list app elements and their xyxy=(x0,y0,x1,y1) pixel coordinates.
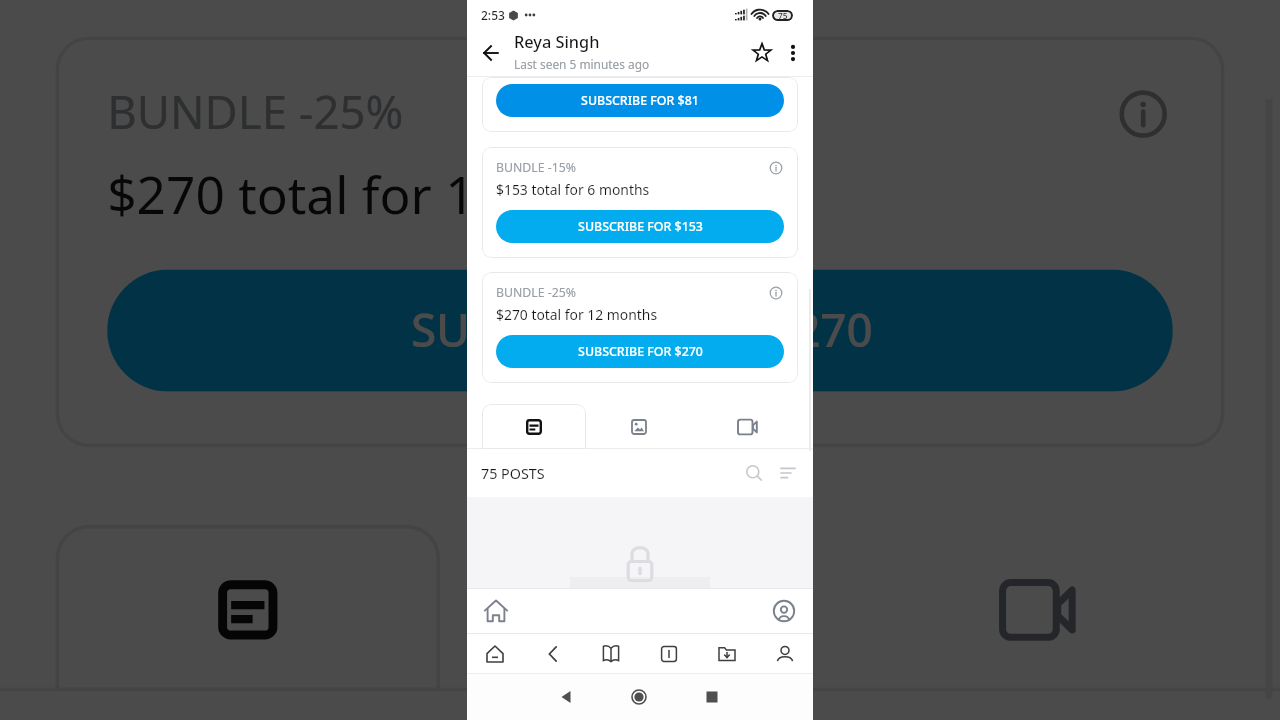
button[interactable]: SUBSCRIBE FOR $270 xyxy=(107,269,1173,392)
button[interactable]: Favorite xyxy=(748,39,776,67)
button[interactable]: BUNDLE -15% xyxy=(482,147,798,258)
staticText: SUBSCRIBE FOR $270 xyxy=(411,299,873,362)
button[interactable]: Videos tab xyxy=(832,525,1225,691)
button[interactable]: Bundle info xyxy=(768,285,784,301)
staticText: $270 total for 12 months xyxy=(107,158,707,229)
staticText: 2:53 xyxy=(481,7,505,23)
button[interactable]: Browser home xyxy=(483,642,507,666)
staticText: SUBSCRIBE FOR $81 xyxy=(581,92,699,109)
button[interactable]: Posts tab xyxy=(482,404,586,449)
button[interactable]: Photos tab xyxy=(628,416,650,438)
button[interactable]: More options xyxy=(782,42,804,64)
button[interactable]: Videos tab xyxy=(692,404,798,449)
button[interactable]: Back xyxy=(554,685,578,709)
staticText: Reya Singh xyxy=(514,31,600,53)
staticText: $270 total for 12 months xyxy=(496,305,658,324)
button[interactable]: SUBSCRIBE FOR $153 xyxy=(496,210,784,243)
staticText: BUNDLE -25% xyxy=(496,284,577,301)
button[interactable]: Back xyxy=(477,39,505,67)
staticText: SUBSCRIBE FOR $153 xyxy=(578,218,703,235)
button[interactable]: BUNDLE -25% xyxy=(482,272,798,383)
button[interactable]: SUBSCRIBE FOR $81 xyxy=(496,84,784,117)
button[interactable]: Photos tab xyxy=(596,569,677,651)
staticText: $153 total for 6 months xyxy=(496,180,650,199)
staticText: SUBSCRIBE FOR $270 xyxy=(578,343,703,360)
button[interactable]: Tabs xyxy=(657,642,681,666)
button[interactable]: Search xyxy=(743,462,765,484)
button[interactable]: Sort xyxy=(777,462,799,484)
staticText: 75 xyxy=(778,10,788,21)
button[interactable]: Home xyxy=(627,685,651,709)
button[interactable]: Posts tab xyxy=(55,525,440,691)
staticText: BUNDLE -25% xyxy=(107,81,407,144)
button[interactable]: Home xyxy=(482,597,510,625)
button[interactable]: Bookmarks xyxy=(599,642,623,666)
button[interactable]: Bundle info xyxy=(1114,84,1173,144)
button[interactable]: Photos tab xyxy=(440,525,832,691)
button[interactable]: SUBSCRIBE FOR $81 xyxy=(482,77,798,132)
button[interactable]: BUNDLE -25% xyxy=(55,36,1225,447)
staticText: 75 POSTS xyxy=(481,464,545,483)
button[interactable]: Account xyxy=(770,597,798,625)
staticText: BUNDLE -15% xyxy=(496,159,577,176)
button[interactable]: Posts tab xyxy=(207,569,288,651)
button[interactable]: SUBSCRIBE FOR $270 xyxy=(496,335,784,368)
button[interactable]: Profile xyxy=(773,642,797,666)
button[interactable]: Videos tab xyxy=(734,416,756,438)
button[interactable]: Videos tab xyxy=(988,569,1069,651)
button[interactable]: Posts tab xyxy=(523,416,545,438)
button[interactable]: Recents xyxy=(700,685,724,709)
button[interactable]: Bundle info xyxy=(768,160,784,176)
button[interactable]: Back xyxy=(541,642,565,666)
staticText: Last seen 5 minutes ago xyxy=(514,56,650,72)
button[interactable]: Photos tab xyxy=(586,404,692,449)
button[interactable]: Downloads xyxy=(715,642,739,666)
